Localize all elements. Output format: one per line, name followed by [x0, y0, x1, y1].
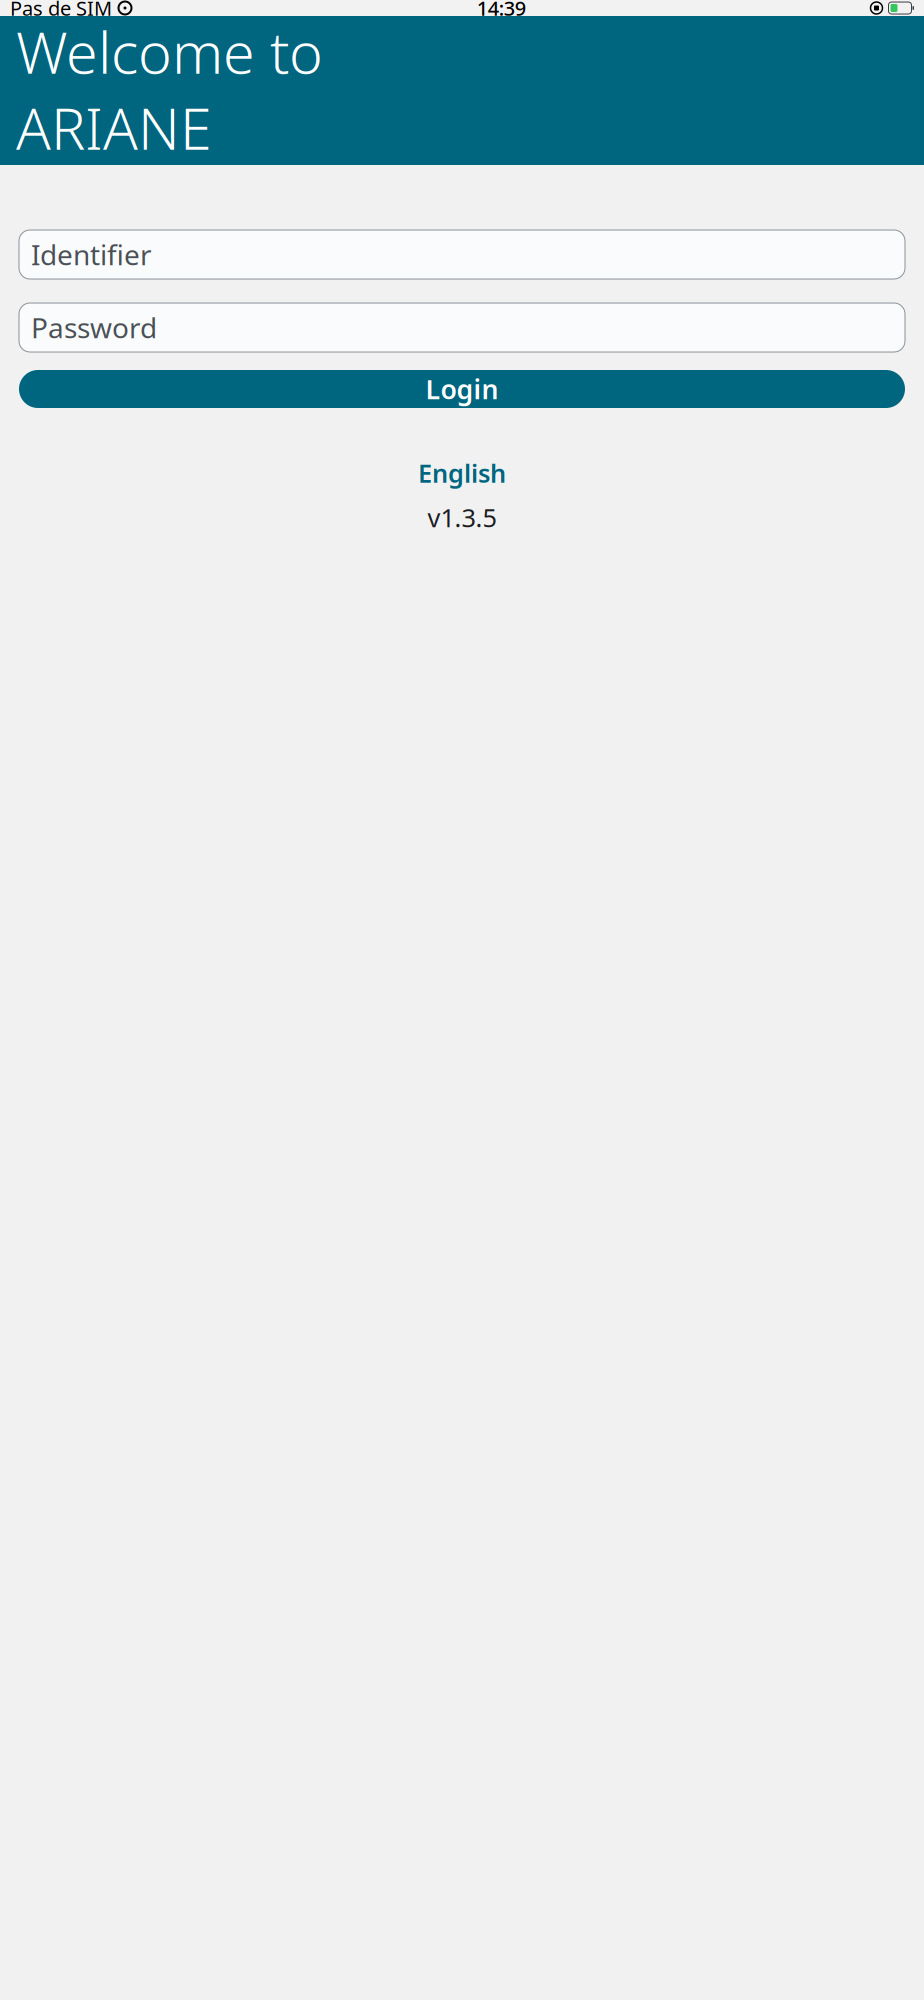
staticText: Password [31, 309, 157, 346]
staticText: Pas de SIM [10, 0, 112, 21]
staticText: Welcome to [16, 13, 323, 89]
button[interactable]: English [404, 450, 520, 496]
button[interactable]: Identifier [19, 230, 905, 279]
staticText: Identifier [31, 236, 152, 273]
button[interactable]: Login [19, 370, 905, 408]
button[interactable]: Password [19, 303, 905, 352]
staticText: 14:39 [477, 0, 526, 21]
staticText: v1.3.5 [427, 501, 496, 534]
staticText: Login [425, 371, 498, 407]
staticText: English [418, 456, 506, 490]
staticText: ARIANE [16, 89, 212, 166]
